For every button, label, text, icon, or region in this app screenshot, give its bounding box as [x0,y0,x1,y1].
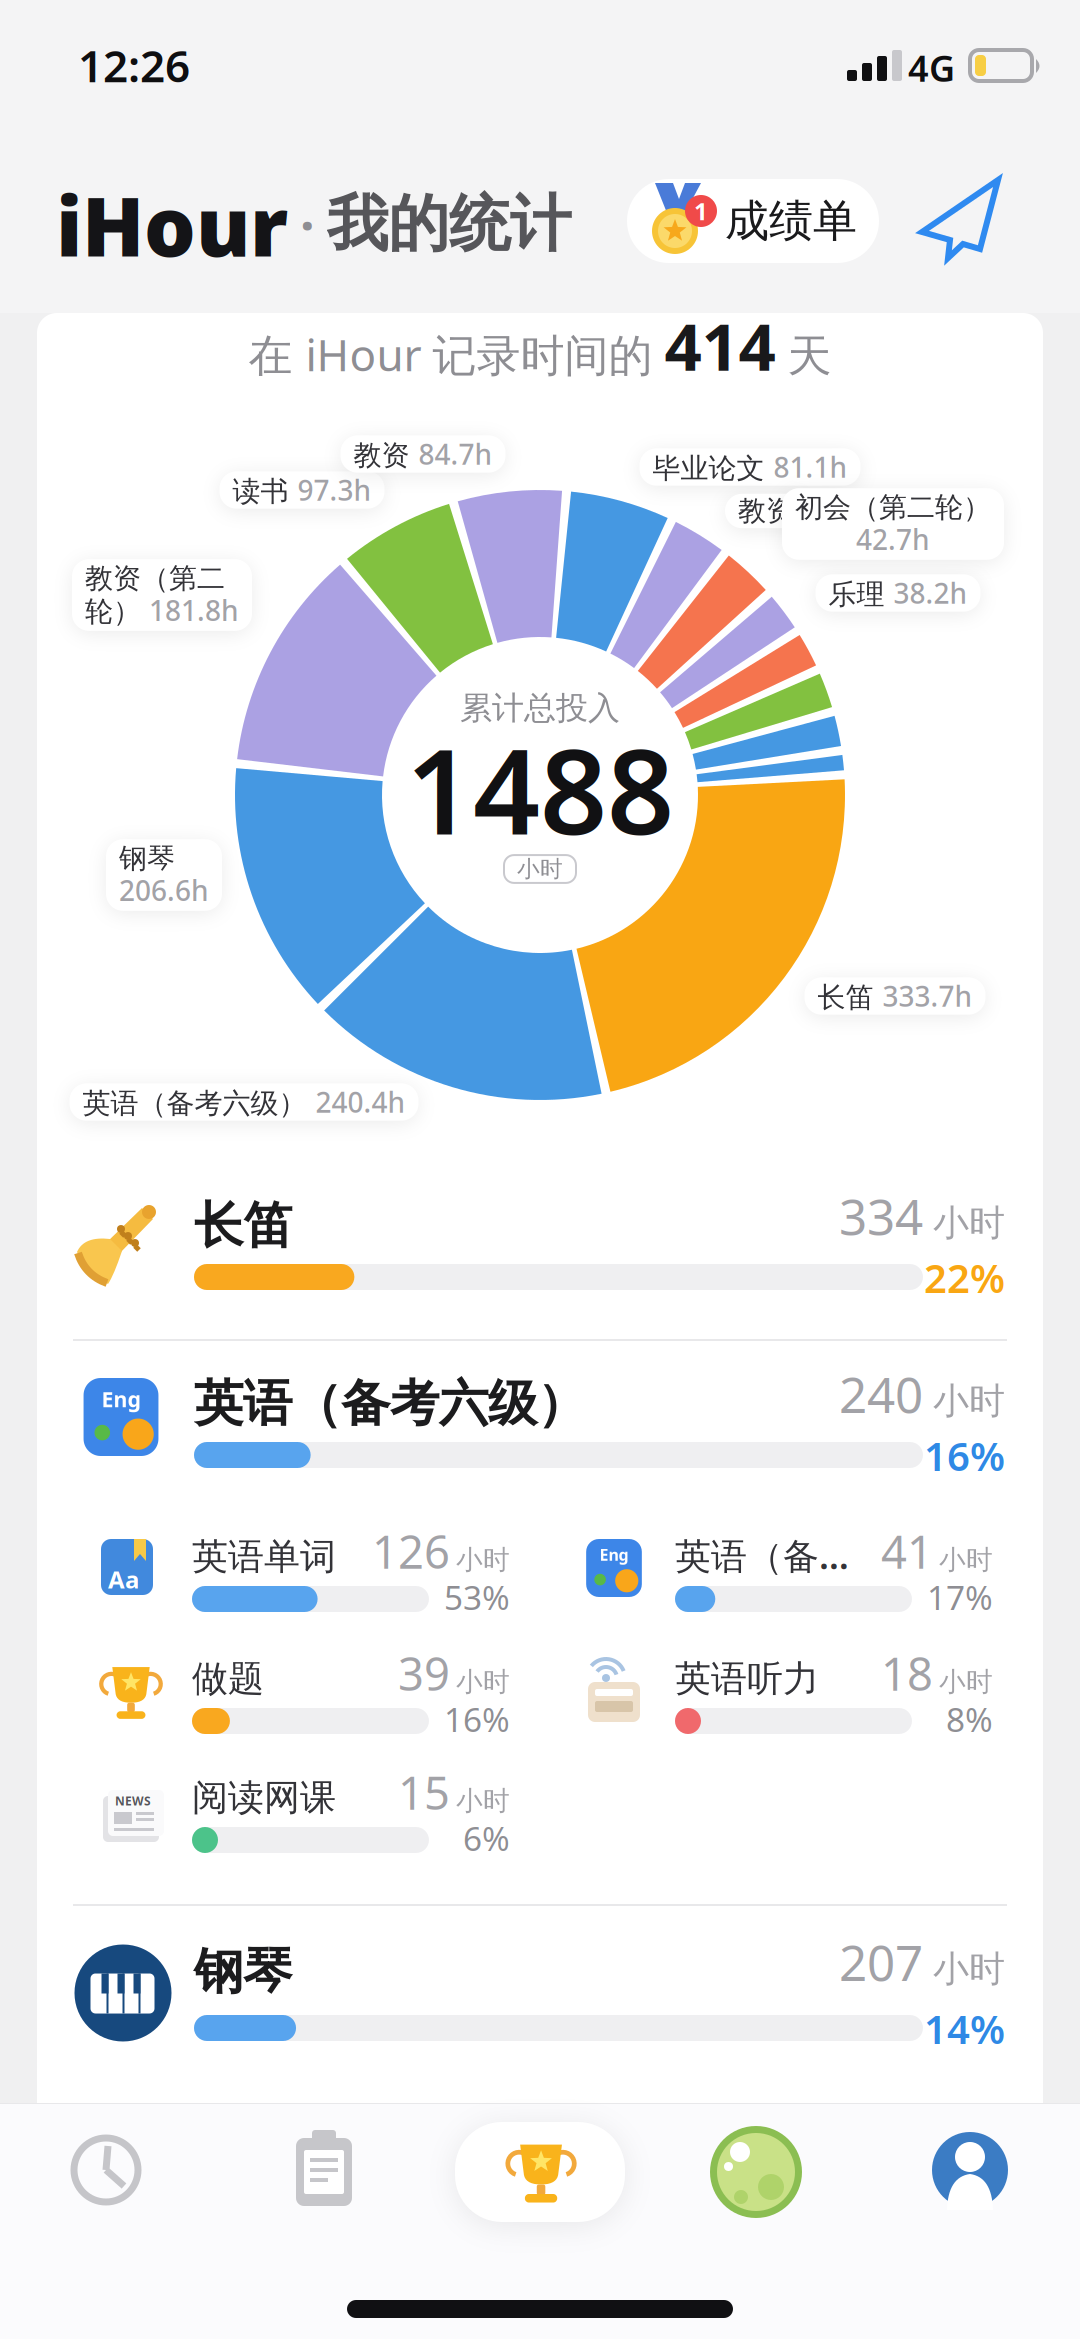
button[interactable]: Eng [70,1368,1010,1518]
staticText: 毕业论文 [652,451,764,486]
button[interactable]: NEWS [100,1777,524,1887]
button[interactable]: Eng [583,1536,1007,1646]
staticText: 长笛 [817,980,873,1015]
staticText: 小时 [456,1543,510,1576]
staticText: 天 [787,329,831,383]
staticText: 我的统计 [327,186,571,262]
staticText: 12:26 [78,36,190,94]
staticText: 教资 [738,494,794,528]
staticText: 16% [444,1697,510,1741]
staticText: 成绩单 [725,194,857,248]
staticText: 初会（第二轮） [795,490,991,525]
staticText: 181.8h [149,591,239,629]
staticText: 240.4h [315,1083,405,1120]
staticText: 小时 [933,1201,1005,1245]
staticText: 207 [839,1929,923,1994]
button[interactable]: Aa [100,1536,524,1646]
button[interactable]: 成就 [455,2122,625,2222]
staticText: 小时 [939,1543,993,1576]
staticText: 14% [924,2002,1005,2055]
staticText: 英语（备考六级） [82,1086,306,1121]
button[interactable]: 分享 [918,176,1004,262]
button[interactable]: 长笛 [70,1190,1010,1340]
button[interactable]: 我的 [914,2114,1026,2226]
staticText: 读书 [232,474,288,509]
staticText: 22% [924,1251,1005,1304]
staticText: 16% [924,1429,1005,1482]
staticText: Aa [108,1563,139,1595]
staticText: 41 [881,1521,933,1581]
staticText: 小时 [939,1665,993,1698]
staticText: 英语单词 [192,1535,336,1579]
staticText: 42.7h [856,521,930,558]
staticText: 乐理 [828,577,884,612]
staticText: 240 [839,1361,923,1426]
staticText: 英语听力 [675,1657,819,1701]
staticText: 39 [398,1643,450,1703]
staticText: 小时 [517,855,563,883]
staticText: 教资 [353,438,409,473]
staticText: 钢琴 [194,1941,292,2002]
button[interactable]: 1 [627,179,879,263]
staticText: 教资（第二 [85,561,225,595]
staticText: 长笛 [194,1195,292,1256]
staticText: 4G [908,44,955,92]
staticText: 英语（备… [675,1531,849,1579]
button[interactable]: 计时 [50,2114,162,2226]
staticText: 333.7h [882,977,972,1014]
staticText: 414 [664,302,775,389]
staticText: 84.7h [418,435,492,472]
staticText: 8% [946,1697,993,1741]
staticText: 126 [372,1521,450,1581]
staticText: iHour [56,171,288,279]
staticText: 小时 [456,1784,510,1817]
staticText: 1488 [406,711,674,867]
staticText: · [300,190,315,259]
button[interactable]: 星球 [700,2114,812,2226]
staticText: 阅读网课 [192,1776,336,1820]
staticText: 53% [444,1575,510,1619]
staticText: 英语（备考六级） [194,1373,586,1434]
staticText: 小时 [933,1379,1005,1423]
staticText: 6% [463,1816,510,1860]
staticText: 97.3h [297,471,371,508]
staticText: 38.2h [893,574,967,611]
staticText: 17% [927,1575,993,1619]
staticText: 做题 [192,1657,264,1701]
button[interactable]: 钢琴 [70,1936,1010,2086]
staticText: 334 [839,1183,923,1248]
staticText: 小时 [456,1665,510,1698]
staticText: 小时 [933,1947,1005,1991]
staticText: NEWS [115,1793,151,1809]
staticText: 累计总投入 [460,688,620,728]
button[interactable]: 记录 [268,2114,380,2226]
button[interactable]: 英语听力 [583,1658,1007,1768]
staticText: 1 [694,195,708,227]
staticText: 81.1h [773,448,847,485]
staticText: 轮） [85,594,141,629]
staticText: 15 [398,1762,450,1822]
staticText: 钢琴 [119,841,175,876]
staticText: Eng [101,1385,140,1413]
staticText: Eng [599,1544,628,1565]
staticText: 18 [881,1643,933,1703]
staticText: 206.6h [119,872,209,909]
staticText: 在 iHour 记录时间的 [248,325,652,383]
button[interactable]: 做题 [100,1658,524,1768]
